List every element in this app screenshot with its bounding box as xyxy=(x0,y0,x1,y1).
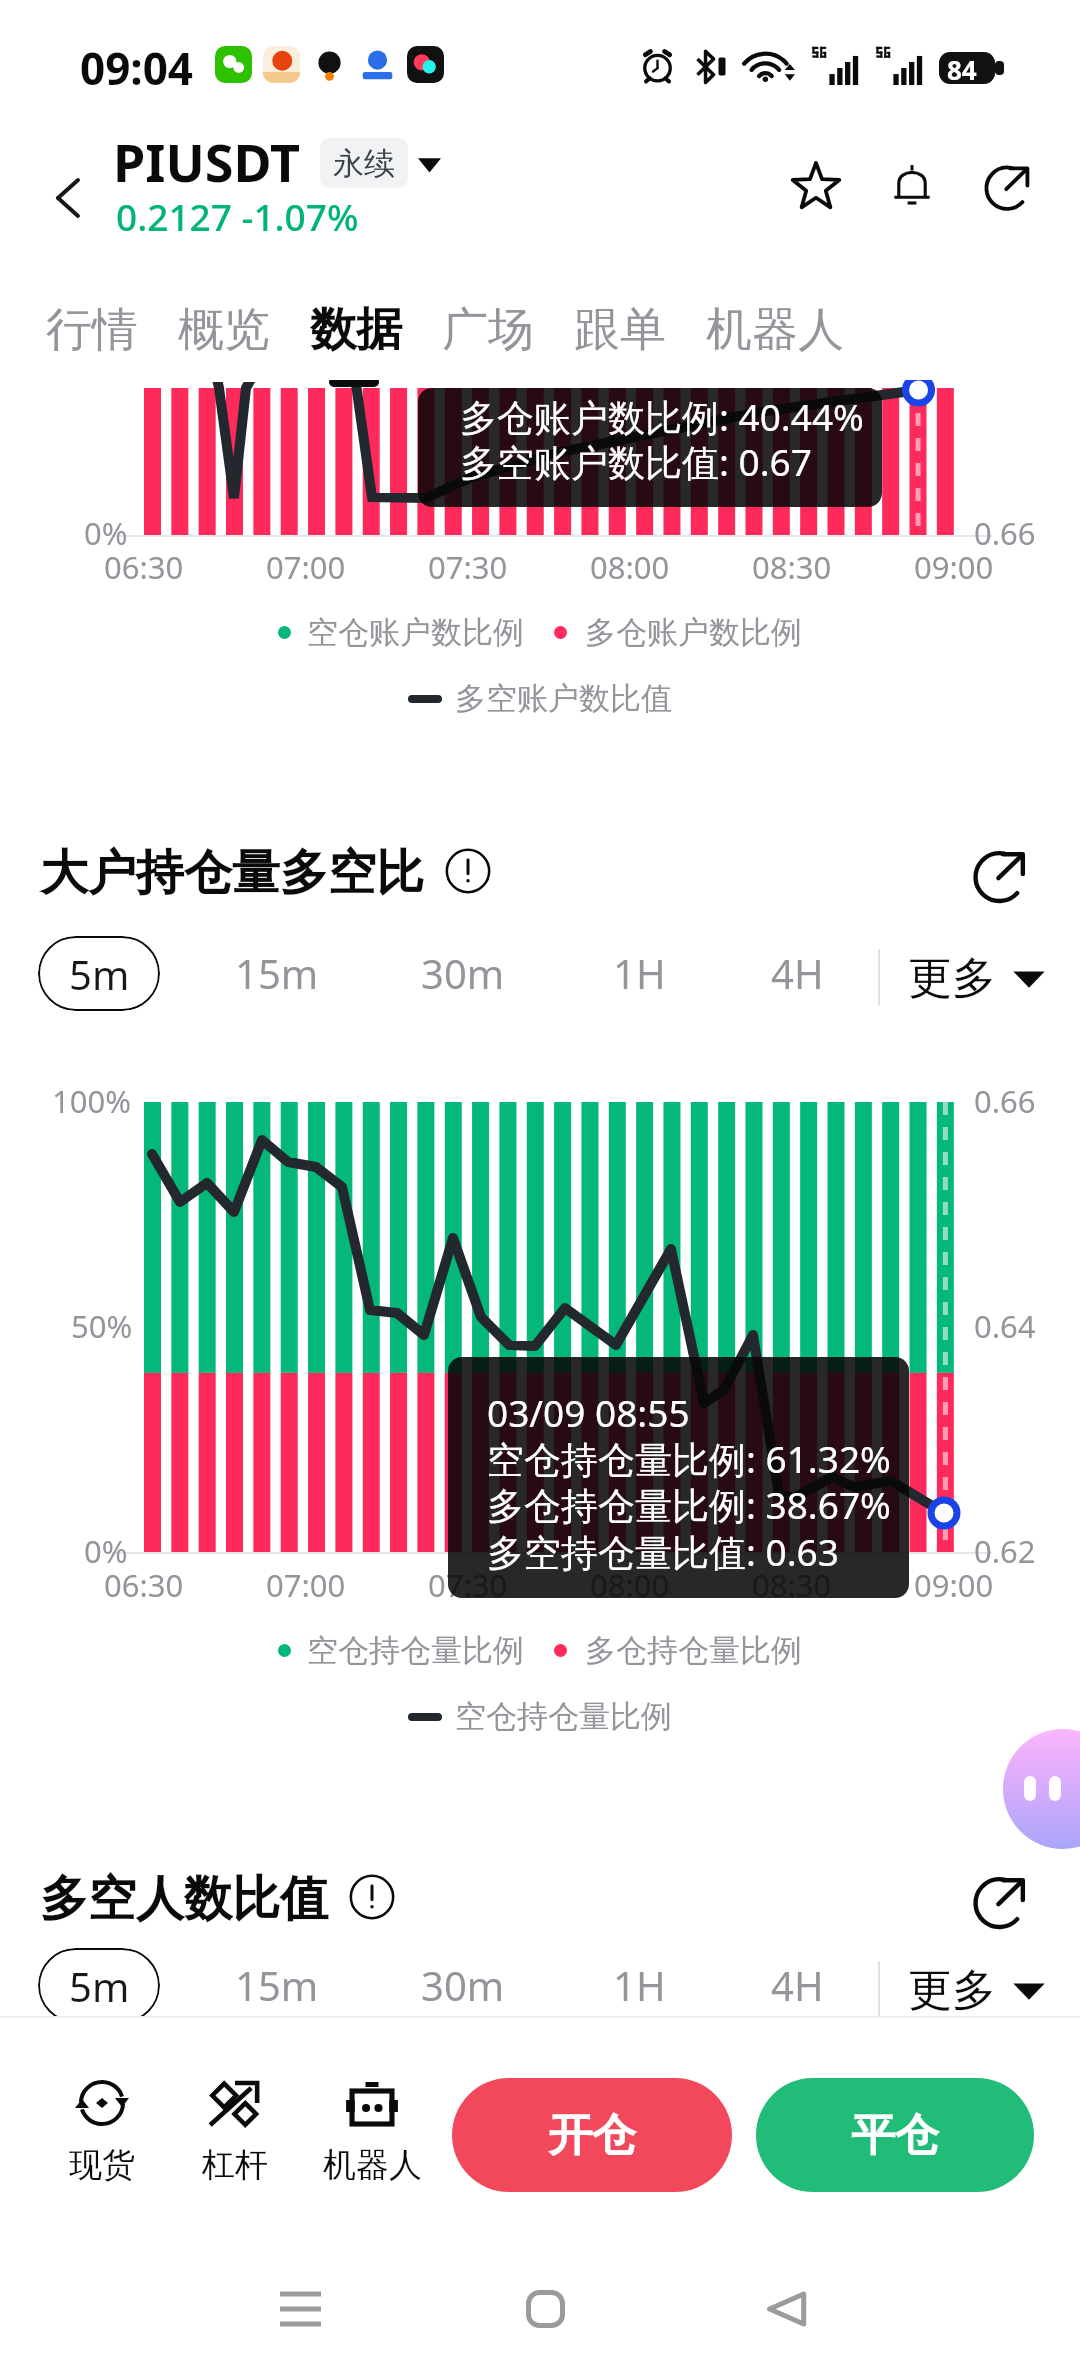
staticText: 空仓持仓量比例: 61.32% xyxy=(487,1433,891,1484)
button[interactable]: Info xyxy=(340,1865,404,1929)
button[interactable]: 永续 xyxy=(320,138,408,188)
button[interactable]: 机器人 xyxy=(312,2078,432,2186)
staticText: 永续 xyxy=(333,144,395,183)
button[interactable]: 4H xyxy=(741,1947,853,2022)
staticText: 机器人 xyxy=(706,301,844,359)
button[interactable]: 30m xyxy=(407,935,519,1010)
staticText: 09:00 xyxy=(914,1564,994,1606)
button[interactable]: Recents xyxy=(258,2267,342,2351)
staticText: 多空账户数比值 xyxy=(455,679,672,718)
button[interactable]: 30m xyxy=(407,1947,519,2022)
staticText: 空仓持仓量比例 xyxy=(307,1631,524,1670)
button[interactable]: 机器人 xyxy=(704,280,846,380)
staticText: 07:30 xyxy=(428,1564,508,1606)
button[interactable]: 1H xyxy=(583,935,695,1010)
staticText: 大户持仓量多空比 xyxy=(40,843,424,903)
staticText: 多空账户数比值: 0.67 xyxy=(460,436,812,487)
staticText: 跟单 xyxy=(574,301,666,359)
button[interactable]: 概览 xyxy=(176,280,272,380)
staticText: 08:30 xyxy=(752,546,832,588)
staticText: 行情 xyxy=(46,301,138,359)
staticText: PIUSDT xyxy=(113,126,300,197)
staticText: 5m xyxy=(69,947,130,1001)
staticText: 现货 xyxy=(69,2144,135,2186)
staticText: 空仓持仓量比例 xyxy=(455,1697,672,1736)
button[interactable]: Home xyxy=(503,2267,587,2351)
staticText: 广场 xyxy=(442,301,534,359)
button[interactable]: 现货 xyxy=(42,2078,162,2186)
button[interactable]: 杠杆 xyxy=(175,2078,295,2186)
button[interactable]: Assistant xyxy=(1003,1729,1080,1849)
staticText: 0% xyxy=(84,512,128,554)
staticText: 0.64 xyxy=(974,1305,1036,1347)
staticText: 15m xyxy=(235,946,319,1000)
staticText: 09:00 xyxy=(914,546,994,588)
staticText: 08:30 xyxy=(752,1564,832,1606)
button[interactable]: 数据 xyxy=(308,280,404,380)
button[interactable]: 5m xyxy=(38,1948,160,2023)
staticText: 1H xyxy=(613,946,666,1000)
staticText: 50% xyxy=(71,1305,133,1347)
staticText: 0.2127 -1.07% xyxy=(116,191,359,241)
staticText: 数据 xyxy=(310,301,402,359)
staticText: 多仓持仓量比例 xyxy=(585,1631,802,1670)
staticText: 4H xyxy=(771,946,824,1000)
staticText: 更多 xyxy=(908,1963,996,2018)
button[interactable]: 4H xyxy=(741,935,853,1010)
staticText: 07:00 xyxy=(266,1564,346,1606)
staticText: 03/09 08:55 xyxy=(487,1387,690,1437)
button[interactable]: Back xyxy=(745,2267,829,2351)
staticText: 06:30 xyxy=(104,1564,184,1606)
button[interactable]: 更多 xyxy=(908,951,1046,1006)
staticText: 09:04 xyxy=(80,38,194,98)
staticText: 1H xyxy=(613,1958,666,2012)
staticText: 更多 xyxy=(908,951,996,1006)
button[interactable]: 1H xyxy=(583,1947,695,2022)
staticText: 概览 xyxy=(178,301,270,359)
button[interactable]: Favorite xyxy=(776,145,856,225)
staticText: 0% xyxy=(84,1530,128,1572)
staticText: 30m xyxy=(421,1958,505,2012)
button[interactable]: 开仓 xyxy=(452,2078,732,2192)
staticText: 15m xyxy=(235,1958,319,2012)
button[interactable]: Expand xyxy=(962,835,1040,913)
button[interactable]: Info xyxy=(436,839,500,903)
staticText: 多空持仓量比值: 0.63 xyxy=(487,1526,839,1577)
staticText: 空仓账户数比例 xyxy=(307,613,524,652)
button[interactable]: 5m xyxy=(38,936,160,1011)
button[interactable]: 15m xyxy=(221,935,333,1010)
staticText: 100% xyxy=(52,1080,131,1122)
staticText: 4H xyxy=(771,1958,824,2012)
staticText: 84 xyxy=(947,52,977,84)
button[interactable]: 行情 xyxy=(44,280,140,380)
button[interactable]: Alerts xyxy=(872,145,952,225)
staticText: 机器人 xyxy=(323,2144,422,2186)
staticText: 多仓账户数比例 xyxy=(585,613,802,652)
button[interactable]: 15m xyxy=(221,1947,333,2022)
button[interactable]: Expand xyxy=(962,1861,1040,1939)
staticText: 多仓账户数比例: 40.44% xyxy=(460,391,864,442)
staticText: 0.66 xyxy=(974,512,1036,554)
staticText: 多空人数比值 xyxy=(40,1869,328,1929)
staticText: 平仓 xyxy=(851,2108,939,2163)
staticText: 0.62 xyxy=(974,1530,1036,1572)
button[interactable]: 跟单 xyxy=(572,280,668,380)
staticText: 06:30 xyxy=(104,546,184,588)
staticText: 开仓 xyxy=(548,2108,636,2163)
button[interactable]: 平仓 xyxy=(756,2078,1034,2192)
staticText: 0.66 xyxy=(974,1080,1036,1122)
staticText: 07:00 xyxy=(266,546,346,588)
staticText: 杠杆 xyxy=(202,2144,268,2186)
button[interactable]: 更多 xyxy=(908,1963,1046,2018)
button[interactable]: Share xyxy=(968,145,1048,225)
staticText: 5m xyxy=(69,1959,130,2013)
staticText: 多仓持仓量比例: 38.67% xyxy=(487,1479,891,1530)
button[interactable]: Back xyxy=(26,156,110,240)
button[interactable]: 广场 xyxy=(440,280,536,380)
staticText: 07:30 xyxy=(428,546,508,588)
staticText: 08:00 xyxy=(590,1564,670,1606)
staticText: 08:00 xyxy=(590,546,670,588)
staticText: 30m xyxy=(421,946,505,1000)
